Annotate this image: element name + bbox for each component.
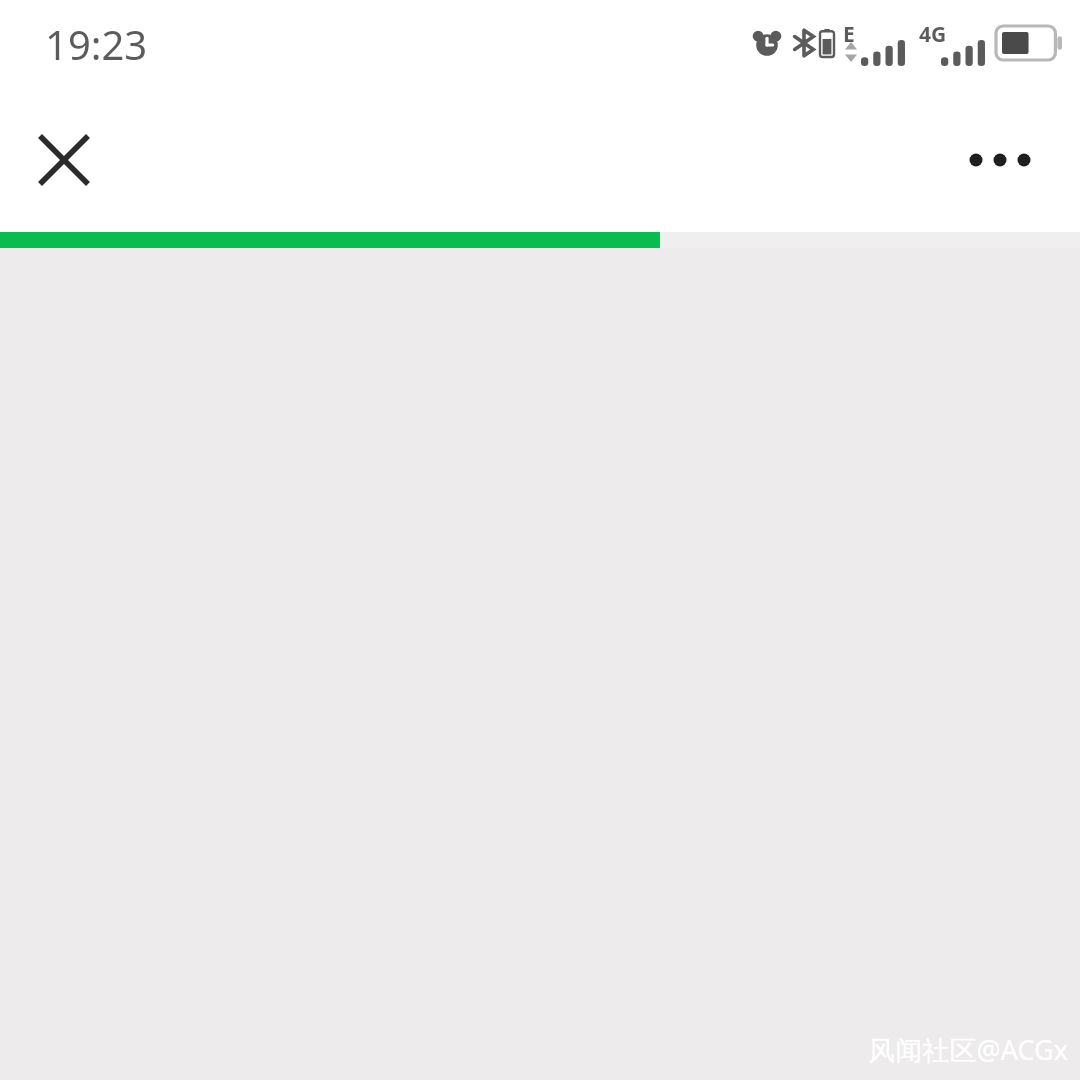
button[interactable]: More options (964, 124, 1036, 196)
staticText: 19:23 (45, 17, 148, 71)
staticText: E (843, 20, 855, 49)
staticText: 风闻社区@ACGx (868, 1031, 1068, 1068)
staticText: 4G (919, 20, 947, 49)
button[interactable]: Close (24, 120, 104, 200)
